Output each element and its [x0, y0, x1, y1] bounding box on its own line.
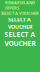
staticText: SELECT A VOUCHER	[1, 11, 39, 16]
staticText: REWARDS AND OFFERS	[5, 0, 35, 11]
staticText: SELECT A VOUCHER	[4, 30, 35, 48]
staticText: SELECT A VOUCHER	[8, 16, 32, 30]
